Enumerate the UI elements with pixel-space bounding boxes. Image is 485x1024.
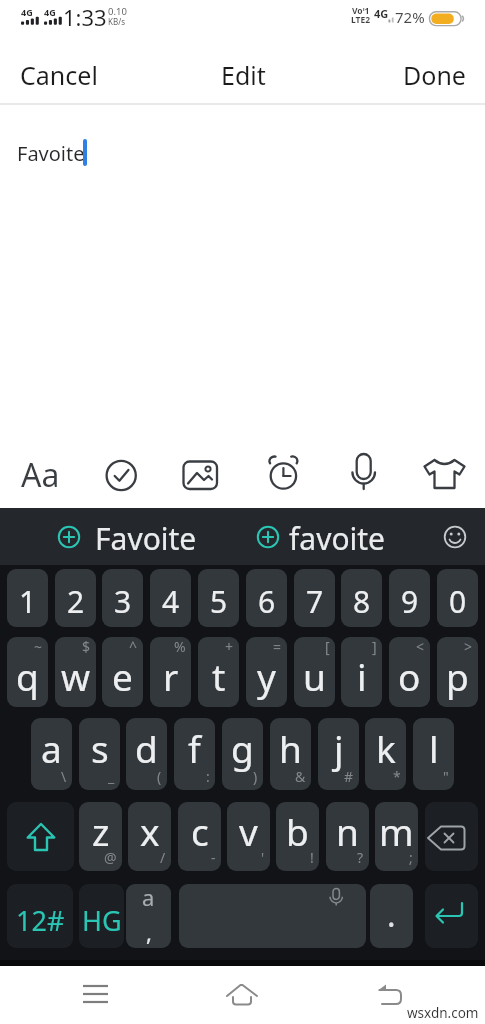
button[interactable]	[97, 451, 145, 499]
button[interactable]: f	[174, 718, 215, 790]
staticText: z	[92, 806, 110, 856]
staticText: 7	[306, 581, 324, 622]
button[interactable]: 12#	[7, 884, 73, 948]
button[interactable]: v	[227, 802, 270, 871]
button[interactable]: h	[270, 718, 311, 790]
button[interactable]: $	[55, 637, 96, 707]
staticText: ,	[146, 917, 152, 947]
staticText: 8	[353, 581, 371, 622]
staticText: a	[142, 884, 155, 912]
staticText: favoite	[289, 518, 386, 559]
button[interactable]: g	[222, 718, 263, 790]
button[interactable]	[179, 884, 366, 948]
staticText: (	[157, 767, 162, 786]
staticText: 6	[258, 581, 276, 622]
button[interactable]: [	[294, 637, 335, 707]
staticText: KB/s	[108, 16, 125, 27]
button[interactable]: c	[178, 802, 221, 871]
staticText: 0.10	[108, 5, 127, 18]
button[interactable]: j	[318, 718, 359, 790]
staticText: Cancel	[20, 58, 98, 92]
staticText: j	[334, 723, 344, 773]
button[interactable]: Edit	[213, 56, 273, 94]
button[interactable]: ~	[7, 637, 48, 707]
button[interactable]	[7, 802, 74, 871]
button[interactable]: %	[150, 637, 191, 707]
staticText: 72%	[395, 7, 425, 27]
button[interactable]: 1	[7, 569, 48, 627]
button[interactable]: ]	[341, 637, 382, 707]
staticText: o	[398, 651, 421, 701]
button[interactable]: s	[79, 718, 120, 790]
staticText: "	[443, 767, 449, 786]
button[interactable]	[259, 451, 307, 499]
staticText: ;	[409, 848, 413, 867]
button[interactable]: <	[389, 637, 430, 707]
button[interactable]	[52, 514, 212, 560]
staticText: r	[163, 651, 179, 701]
button[interactable]: l	[413, 718, 454, 790]
button[interactable]: >	[437, 637, 478, 707]
staticText: s	[91, 723, 109, 773]
staticText: [	[325, 637, 330, 656]
staticText: /	[160, 848, 166, 867]
button[interactable]	[340, 448, 388, 500]
staticText: n	[336, 806, 359, 856]
staticText: %	[174, 637, 186, 656]
staticText: _	[108, 767, 115, 786]
staticText: *	[393, 767, 401, 786]
button[interactable]	[425, 884, 478, 948]
button[interactable]: b	[276, 802, 319, 871]
button[interactable]: a	[31, 718, 72, 790]
button[interactable]: 2	[55, 569, 96, 627]
button[interactable]	[217, 970, 267, 1020]
button[interactable]	[178, 451, 226, 499]
staticText: k	[376, 723, 396, 773]
staticText: 5	[210, 581, 228, 622]
staticText: u	[303, 651, 326, 701]
button[interactable]: Cancel	[10, 56, 107, 94]
staticText: v	[239, 806, 258, 856]
button[interactable]: 7	[294, 569, 335, 627]
button[interactable]	[438, 520, 472, 554]
button[interactable]	[368, 970, 418, 1020]
button[interactable]: 3	[102, 569, 143, 627]
staticText: 4G	[44, 6, 56, 18]
staticText: d	[135, 723, 158, 773]
button[interactable]: z	[79, 802, 122, 871]
staticText: +	[225, 637, 234, 656]
staticText: @	[104, 848, 117, 867]
button[interactable]: 0	[437, 569, 478, 627]
button[interactable]: +	[198, 637, 239, 707]
button[interactable]: n	[326, 802, 369, 871]
button[interactable]	[425, 802, 478, 871]
staticText: Aa	[21, 453, 60, 497]
staticText: wsxdn.com	[407, 1004, 479, 1022]
button[interactable]: a	[126, 884, 171, 948]
staticText: y	[257, 651, 276, 701]
button[interactable]: 9	[389, 569, 430, 627]
button[interactable]: HG	[79, 884, 124, 948]
button[interactable]: k	[365, 718, 406, 790]
button[interactable]: 6	[246, 569, 287, 627]
button[interactable]	[250, 514, 396, 560]
button[interactable]: 8	[341, 569, 382, 627]
button[interactable]: x	[128, 802, 171, 871]
button[interactable]: Aa	[16, 451, 64, 499]
button[interactable]: .	[370, 884, 413, 948]
button[interactable]: d	[126, 718, 167, 790]
staticText: ^	[129, 637, 138, 656]
button[interactable]: ^	[102, 637, 143, 707]
button[interactable]: 5	[198, 569, 239, 627]
button[interactable]: 4	[150, 569, 191, 627]
button[interactable]: m	[375, 802, 418, 871]
button[interactable]	[71, 970, 121, 1020]
staticText: q	[16, 651, 39, 701]
button[interactable]: =	[246, 637, 287, 707]
staticText: g	[231, 723, 254, 773]
button[interactable]: Done	[398, 56, 471, 94]
staticText: >	[464, 637, 473, 656]
button[interactable]	[420, 451, 470, 499]
staticText: m	[379, 806, 414, 856]
staticText: e	[112, 651, 133, 701]
